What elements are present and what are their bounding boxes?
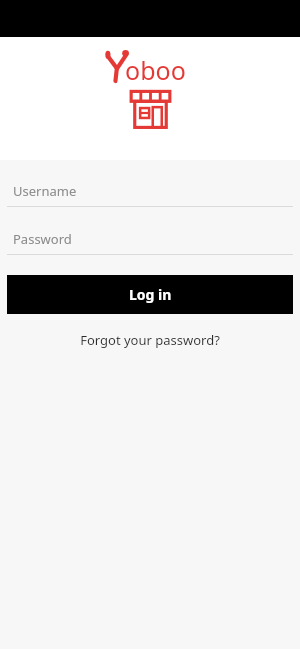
staticText: Forgot your password?: [80, 331, 220, 349]
staticText: Username: [13, 182, 77, 200]
button[interactable]: Password: [0, 228, 300, 255]
staticText: Log in: [129, 285, 172, 304]
staticText: Password: [13, 230, 72, 248]
button[interactable]: Username: [0, 180, 300, 207]
button[interactable]: Log in: [7, 275, 293, 314]
staticText: oboo: [125, 53, 186, 85]
other: Yoboo store logo: [128, 86, 173, 131]
button[interactable]: Forgot your password?: [0, 330, 300, 350]
